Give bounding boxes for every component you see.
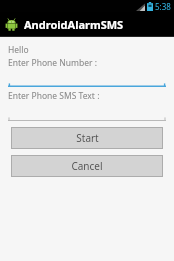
- staticText: Enter Phone Number :: [8, 57, 98, 69]
- button[interactable]: SMS text input field: [8, 117, 166, 121]
- staticText: Cancel: [71, 159, 103, 173]
- staticText: AndroidAlarmSMS: [24, 17, 124, 32]
- staticText: 5:38: [155, 1, 171, 12]
- staticText: Hello: [8, 44, 29, 56]
- staticText: Start: [76, 131, 99, 145]
- button[interactable]: Cancel: [11, 155, 163, 177]
- staticText: Enter Phone SMS Text :: [8, 90, 100, 102]
- button[interactable]: Phone number input field: [8, 83, 166, 87]
- other: App icon: [5, 18, 18, 31]
- button[interactable]: Start: [11, 127, 163, 149]
